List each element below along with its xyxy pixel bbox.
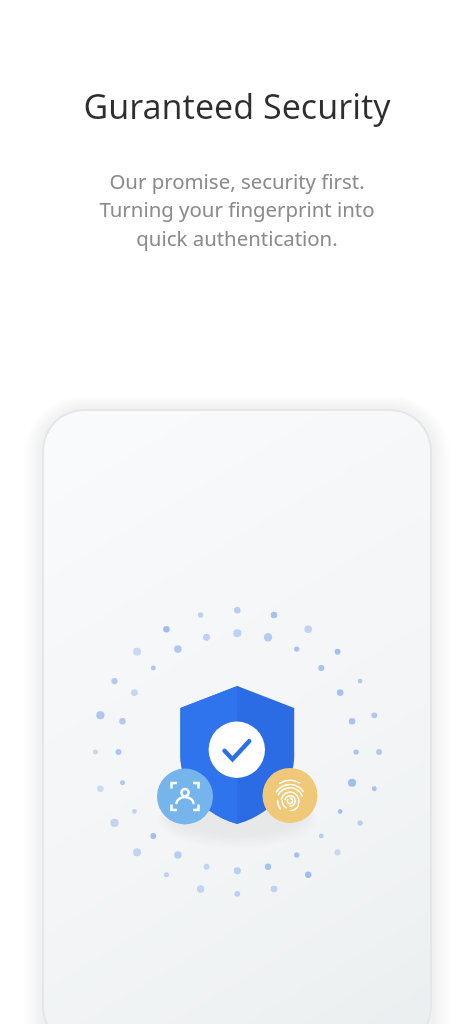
staticText: Our promise, security first. Turning you… xyxy=(99,167,375,252)
staticText: Guranteed Security xyxy=(83,83,391,129)
